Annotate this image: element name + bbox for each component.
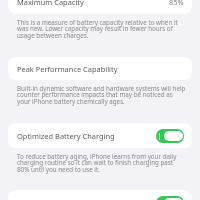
button[interactable]: Clean Energy Charging	[156, 196, 184, 200]
staticText: Built-in dynamic software and hardware s…	[17, 84, 186, 106]
button[interactable]: Peak Performance Capability	[8, 57, 192, 80]
staticText: This is a measure of battery capacity re…	[17, 18, 178, 40]
staticText: To reduce battery aging, iPhone learns f…	[17, 152, 177, 174]
staticText: Peak Performance Capability	[17, 64, 118, 74]
button[interactable]: Optimized Battery Charging	[8, 123, 192, 148]
staticText: 85%	[169, 0, 184, 7]
button[interactable]: Optimized Battery Charging	[156, 129, 184, 143]
staticText: Maximum Capacity	[17, 0, 84, 7]
staticText: Optimized Battery Charging	[17, 131, 115, 141]
button[interactable]: Clean Energy Charging	[8, 190, 192, 200]
button[interactable]: Maximum Capacity	[8, 0, 192, 14]
